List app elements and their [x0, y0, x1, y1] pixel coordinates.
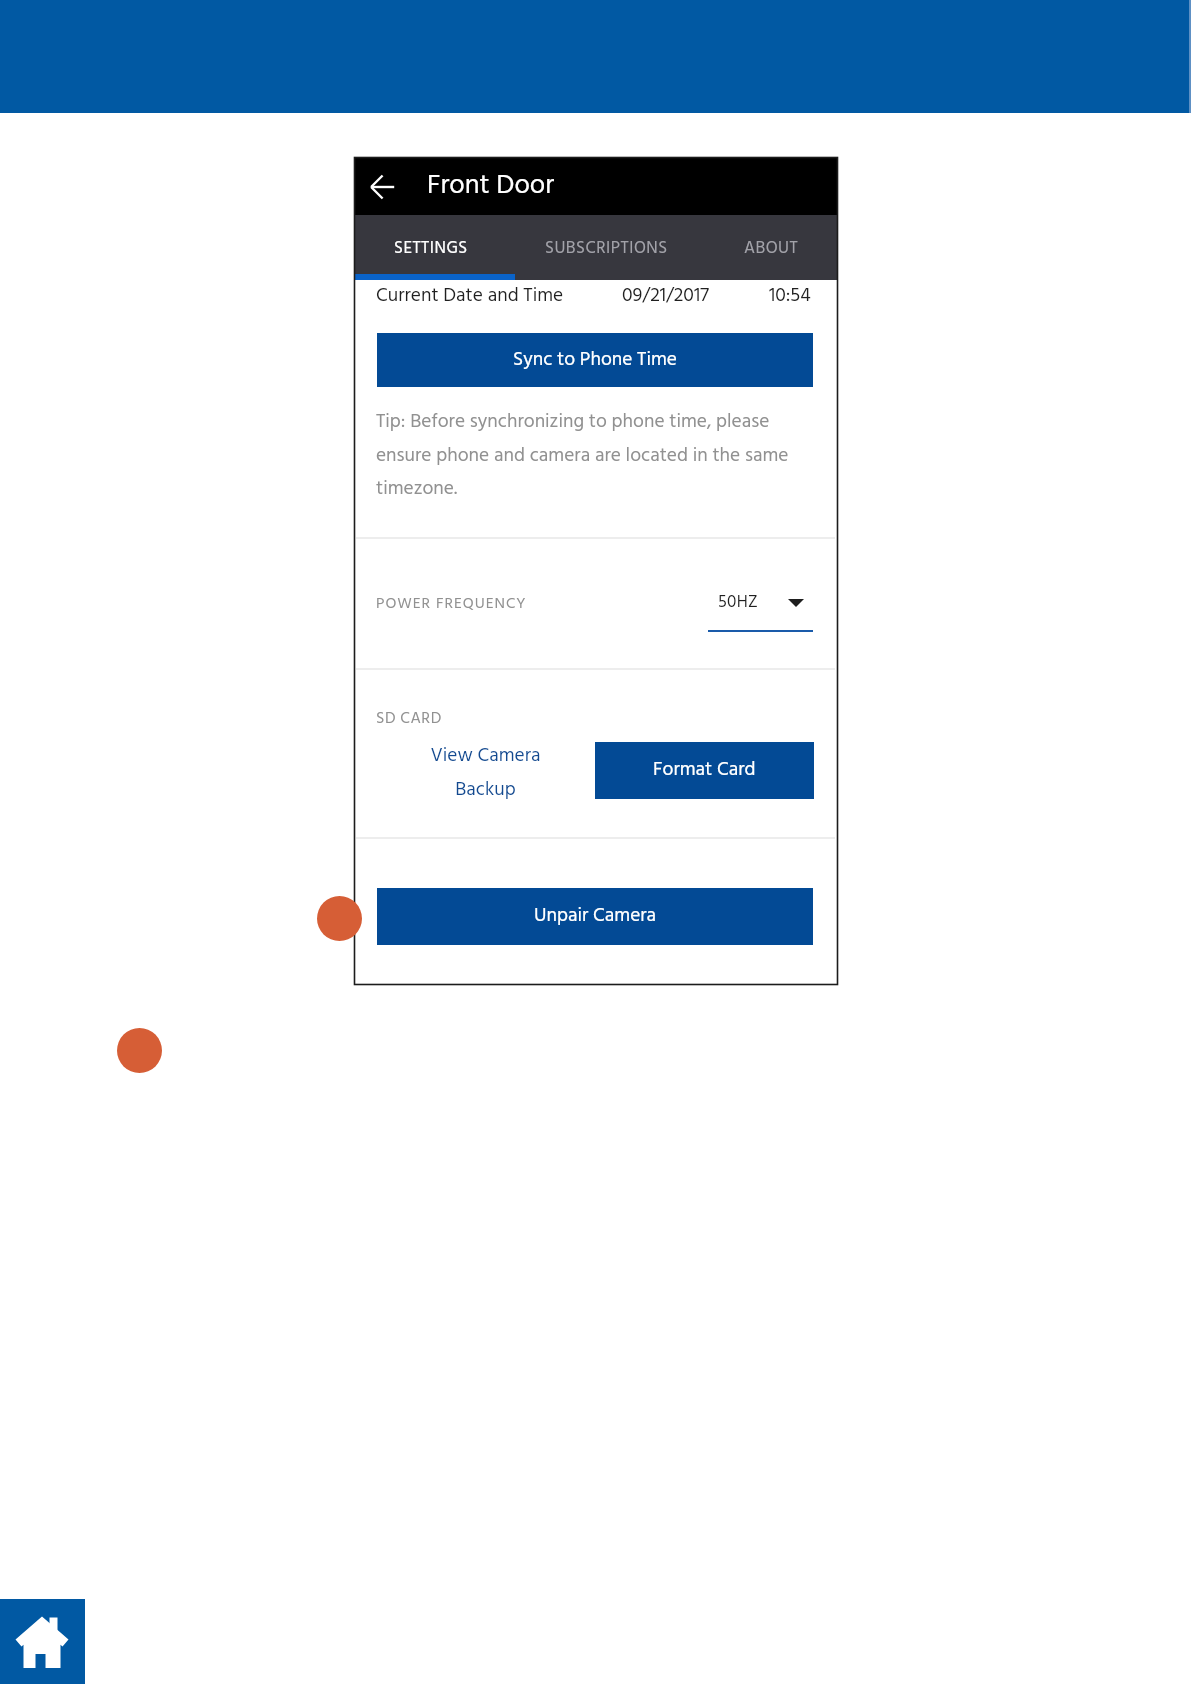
button[interactable]: Unpair Camera — [377, 888, 813, 945]
button[interactable]: Sync to Phone Time — [377, 333, 813, 387]
staticText: 09/21/2017 — [622, 281, 709, 312]
button[interactable]: SUBSCRIPTIONS — [515, 215, 676, 280]
button[interactable]: Home — [0, 1599, 85, 1684]
button[interactable]: Select power frequency — [777, 589, 815, 617]
staticText: Unpair Camera — [534, 901, 657, 932]
staticText: Tip: Before synchronizing to phone time,… — [376, 407, 804, 504]
staticText: Current Date and Time — [376, 281, 564, 312]
staticText: SUBSCRIPTIONS — [545, 235, 668, 262]
button[interactable]: SETTINGS — [354, 215, 515, 280]
staticText: Front Door — [427, 164, 555, 208]
staticText: 10:54 — [769, 281, 811, 312]
staticText: 50HZ — [718, 589, 759, 617]
staticText: View Camera Backup — [426, 741, 545, 805]
button[interactable]: Format Card — [595, 742, 814, 799]
staticText: SETTINGS — [394, 235, 468, 262]
button[interactable]: Back — [354, 157, 412, 215]
staticText: Sync to Phone Time — [513, 345, 677, 376]
staticText: Format Card — [653, 755, 756, 786]
staticText: POWER FREQUENCY — [376, 592, 527, 617]
button[interactable]: View Camera Backup — [392, 741, 579, 805]
button[interactable]: ABOUT — [676, 215, 837, 280]
staticText: SD CARD — [376, 706, 442, 732]
staticText: ABOUT — [744, 235, 799, 262]
